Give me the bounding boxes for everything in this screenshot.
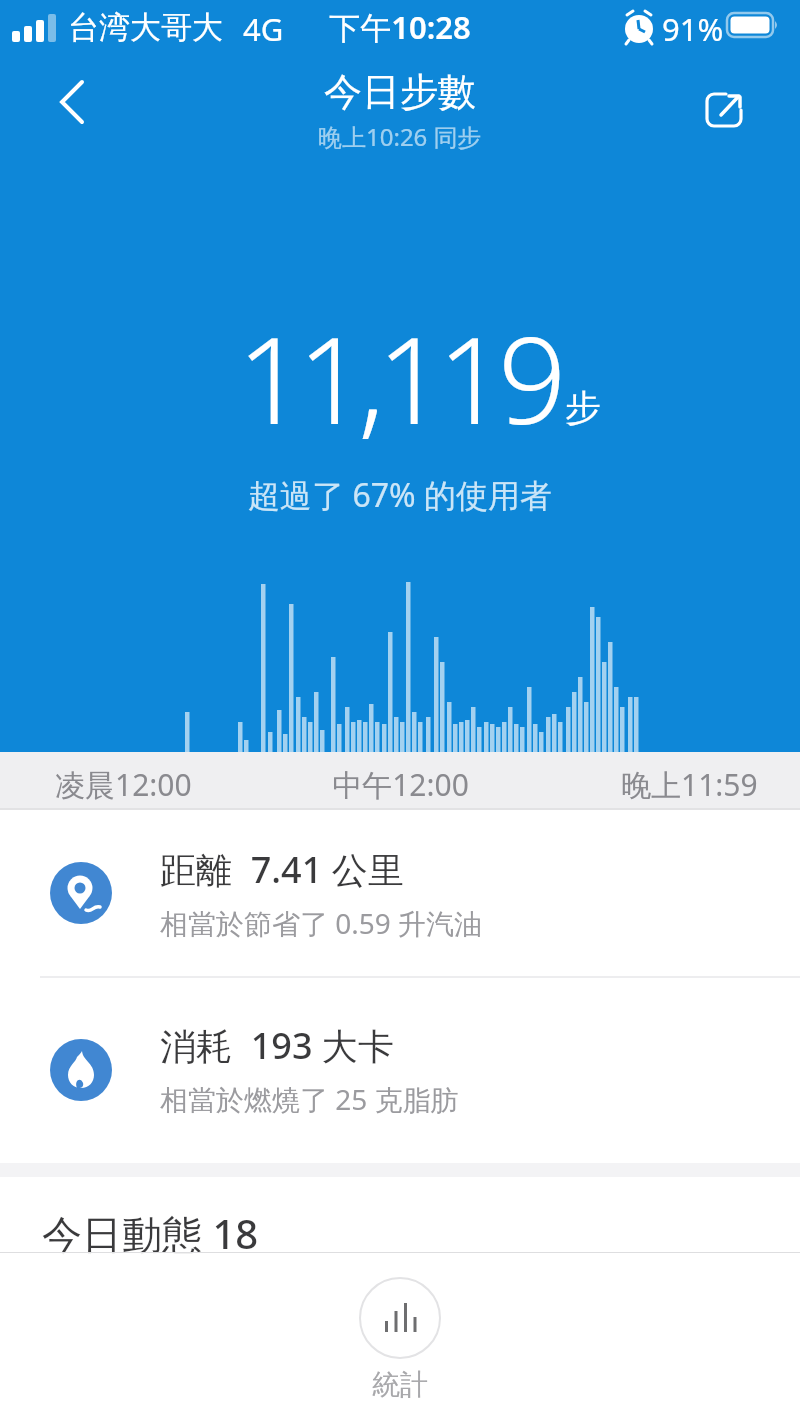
staticText: 消耗 193 大卡 — [160, 1021, 394, 1070]
staticText: 凌晨12:00 — [55, 764, 192, 805]
staticText: 91% — [662, 8, 724, 50]
button[interactable] — [692, 76, 756, 140]
staticText: 晚上10:26 同步 — [318, 120, 482, 153]
staticText: 相當於燃燒了 25 克脂肪 — [160, 1080, 459, 1118]
button[interactable]: 距離 7.41 公里 — [0, 810, 800, 976]
button[interactable]: 消耗 193 大卡 — [0, 978, 800, 1161]
staticText: 11,119 — [237, 296, 559, 459]
staticText: 下午10:28 — [329, 6, 471, 48]
staticText: 4G — [243, 8, 284, 50]
button[interactable] — [40, 70, 104, 134]
staticText: 步 — [565, 385, 601, 430]
staticText: 相當於節省了 0.59 升汽油 — [160, 904, 483, 942]
staticText: 距離 7.41 公里 — [160, 845, 404, 894]
staticText: 晚上11:59 — [621, 764, 758, 805]
staticText: 中午12:00 — [332, 764, 469, 805]
staticText: 統計 — [372, 1367, 428, 1402]
staticText: 今日動態 18 — [42, 1206, 259, 1261]
staticText: 台湾大哥大 — [68, 8, 223, 47]
button[interactable]: 統計 — [359, 1277, 441, 1402]
staticText: 超過了 67% 的使用者 — [248, 473, 552, 517]
staticText: 今日步數 — [324, 68, 476, 116]
